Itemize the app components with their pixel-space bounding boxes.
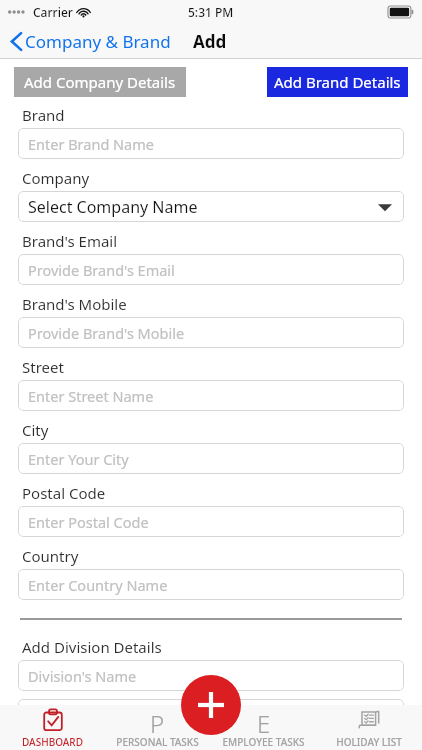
staticText: Enter Street Name bbox=[28, 386, 154, 406]
staticText: Carrier bbox=[33, 4, 73, 20]
button[interactable]: Add bbox=[181, 675, 241, 735]
button[interactable]: P bbox=[116, 705, 199, 750]
button[interactable]: DASHBOARD bbox=[22, 705, 83, 750]
staticText: DASHBOARD bbox=[22, 735, 83, 749]
staticText: Add Brand Details bbox=[274, 72, 401, 92]
button[interactable]: Provide Brand's Email bbox=[18, 254, 404, 285]
staticText: P bbox=[150, 707, 165, 733]
staticText: Add bbox=[193, 30, 227, 53]
staticText: Enter Brand Name bbox=[28, 134, 154, 154]
button[interactable]: Provide Brand's Mobile bbox=[18, 317, 404, 348]
staticText: Add Company Details bbox=[24, 72, 176, 92]
staticText: Country bbox=[22, 546, 79, 566]
staticText: PERSONAL TASKS bbox=[116, 735, 199, 749]
button[interactable]: Add Company Details bbox=[14, 67, 186, 97]
button[interactable]: Add Brand Details bbox=[267, 67, 408, 97]
staticText: EMPLOYEE TASKS bbox=[222, 735, 305, 749]
button[interactable]: Enter Brand Name bbox=[18, 128, 404, 159]
button[interactable]: Enter Your City bbox=[18, 443, 404, 474]
staticText: Brand's Email bbox=[22, 231, 118, 251]
staticText: Add Division Details bbox=[22, 637, 162, 657]
staticText: Enter Country Name bbox=[28, 575, 168, 595]
button[interactable]: HOLIDAY LIST bbox=[336, 705, 402, 750]
button[interactable]: Enter Postal Code bbox=[18, 506, 404, 537]
button[interactable]: Company & Brand bbox=[0, 23, 177, 59]
staticText: Provide Brand's Email bbox=[28, 260, 175, 280]
staticText: Provide Brand's Mobile bbox=[28, 323, 185, 343]
button[interactable]: Select Company Name bbox=[18, 191, 404, 222]
staticText: Enter Postal Code bbox=[28, 512, 149, 532]
button[interactable]: Division's Name bbox=[18, 660, 404, 691]
staticText: Brand's Mobile bbox=[22, 294, 127, 314]
staticText: 5:31 PM bbox=[188, 4, 234, 20]
button[interactable]: E bbox=[222, 705, 305, 750]
staticText: Enter Your City bbox=[28, 449, 129, 469]
button[interactable]: Enter Country Name bbox=[18, 569, 404, 600]
button[interactable]: Division's Email bbox=[18, 699, 404, 730]
staticText: HOLIDAY LIST bbox=[336, 735, 402, 749]
staticText: E bbox=[257, 707, 271, 733]
staticText: Brand bbox=[22, 105, 65, 125]
staticText: Company bbox=[22, 168, 90, 188]
staticText: City bbox=[22, 420, 49, 440]
staticText: Street bbox=[22, 357, 64, 377]
button[interactable]: Enter Street Name bbox=[18, 380, 404, 411]
staticText: Select Company Name bbox=[28, 196, 198, 218]
staticText: Postal Code bbox=[22, 483, 106, 503]
staticText: Division's Name bbox=[28, 666, 137, 686]
staticText: Division's Email bbox=[28, 705, 133, 725]
staticText: Company & Brand bbox=[25, 30, 171, 53]
